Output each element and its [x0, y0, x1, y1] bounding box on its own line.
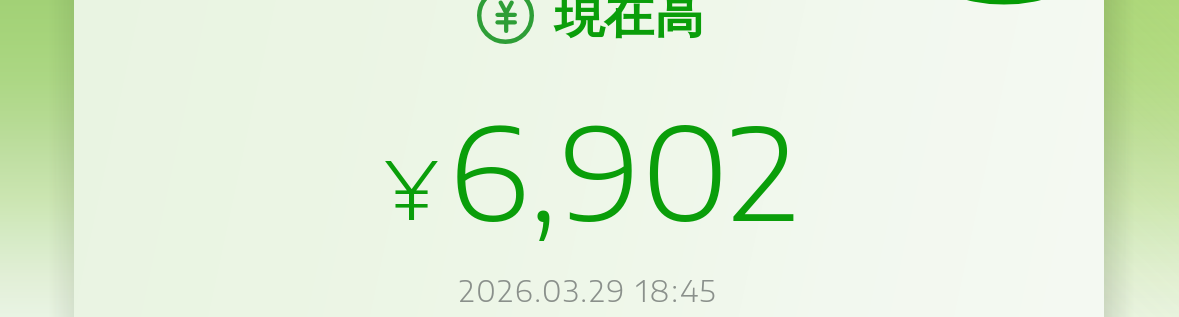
staticText: 2026.03.29 18:45	[459, 273, 718, 308]
staticText: ¥	[385, 138, 438, 238]
button[interactable]: 現在高	[477, 0, 704, 47]
button[interactable]: Charge	[920, 0, 1088, 6]
staticText: 6,902	[448, 90, 799, 249]
staticText: 現在高	[554, 0, 704, 47]
